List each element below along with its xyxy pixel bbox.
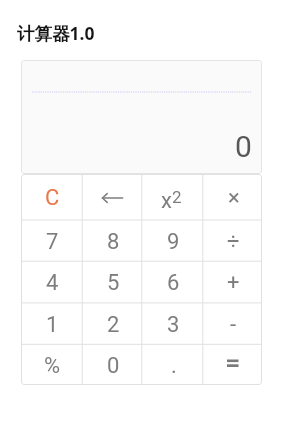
button[interactable]: 7 [21,220,82,261]
staticText: ÷ [227,229,240,255]
staticText: 3 [167,312,180,338]
button[interactable] [203,344,262,385]
button[interactable]: × [203,174,262,220]
button[interactable]: 2 [82,303,142,344]
staticText: 0 [107,353,120,379]
staticText: 9 [167,229,180,255]
button[interactable]: 6 [142,261,203,303]
staticText: 计算器1.0 [17,21,95,45]
staticText: x2 [161,187,182,214]
button[interactable]: 0 [82,344,142,385]
staticText: - [230,312,237,338]
staticText: 5 [107,270,120,296]
staticText: 6 [167,270,180,296]
button[interactable]: 5 [82,261,142,303]
button[interactable]: 1 [21,303,82,344]
staticText: 7 [46,229,59,255]
staticText: 8 [107,229,120,255]
staticText: 1 [46,312,59,338]
staticText: 4 [46,270,59,296]
staticText: × [228,185,240,211]
button[interactable]: % [21,344,82,385]
button[interactable]: x2 [142,174,203,220]
button[interactable]: . [142,344,203,385]
button[interactable] [82,174,142,220]
button[interactable]: - [203,303,262,344]
staticText: . [171,353,177,379]
button[interactable]: + [203,261,262,303]
staticText: + [227,270,240,296]
staticText: C [45,185,60,211]
button[interactable]: 9 [142,220,203,261]
button[interactable]: 3 [142,303,203,344]
staticText: 2 [107,312,120,338]
staticText: 0 [235,129,252,164]
staticText: % [44,353,61,379]
button[interactable]: C [21,174,82,220]
button[interactable]: 4 [21,261,82,303]
button[interactable]: 8 [82,220,142,261]
button[interactable]: ÷ [203,220,262,261]
